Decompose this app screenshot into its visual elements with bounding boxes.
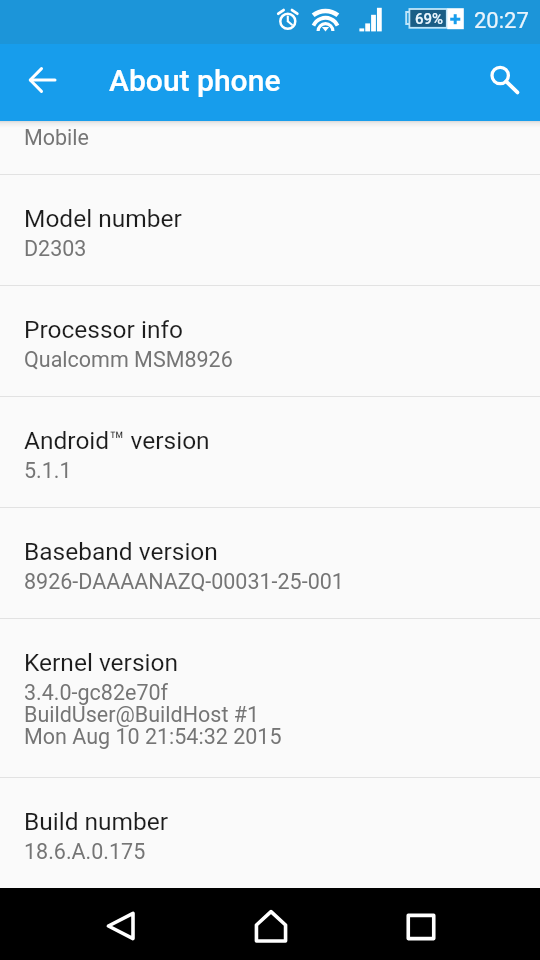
button[interactable]: Navigate up: [18, 56, 66, 104]
button[interactable]: Kernel version: [0, 619, 540, 778]
button[interactable]: Build number: [0, 778, 540, 889]
staticText: D2303: [24, 236, 87, 261]
staticText: 20:27: [474, 8, 529, 34]
staticText: Android™ version: [24, 426, 210, 455]
staticText: Processor info: [24, 315, 183, 344]
button[interactable]: Search: [476, 56, 524, 104]
button[interactable]: Model number: [0, 175, 540, 286]
button[interactable]: Baseband version: [0, 508, 540, 619]
button[interactable]: Recent apps: [385, 888, 457, 960]
staticText: 18.6.A.0.175: [24, 839, 146, 864]
staticText: 69%: [415, 10, 444, 28]
staticText: Qualcomm MSM8926: [24, 347, 233, 372]
staticText: Mon Aug 10 21:54:32 2015: [24, 724, 282, 749]
staticText: Model number: [24, 204, 182, 233]
button[interactable]: Processor info: [0, 286, 540, 397]
staticText: BuildUser@BuildHost #1: [24, 702, 260, 727]
staticText: Mobile: [24, 125, 89, 150]
staticText: Kernel version: [24, 648, 179, 677]
staticText: Build number: [24, 807, 169, 836]
staticText: Baseband version: [24, 537, 218, 566]
staticText: 8926-DAAAANAZQ-00031-25-001: [24, 569, 344, 594]
button[interactable]: Back: [85, 888, 157, 960]
button[interactable]: Android™ version: [0, 397, 540, 508]
button[interactable]: Home: [235, 888, 307, 960]
staticText: About phone: [109, 63, 281, 98]
button[interactable]: Mobile: [0, 121, 540, 174]
staticText: 5.1.1: [24, 458, 72, 483]
staticText: 3.4.0-gc82e70f: [24, 680, 169, 705]
